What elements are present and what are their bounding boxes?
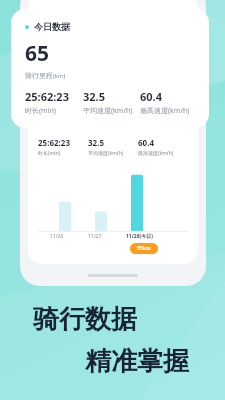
staticText: (km) (53, 72, 66, 80)
staticText: 65km (137, 245, 151, 252)
staticText: 时长(min) (25, 106, 56, 116)
staticText: 时长(min) (38, 150, 61, 157)
staticText: 骑行数据 (33, 303, 137, 336)
staticText: 11/26 (50, 233, 64, 240)
staticText: 60.4 (138, 137, 154, 148)
staticText: 骑行里程 (25, 71, 53, 80)
staticText: 精准掌握 (85, 345, 189, 378)
staticText: 65 (25, 39, 50, 68)
staticText: 最高速度(km/h) (140, 106, 190, 116)
staticText: 11/28(今日) (126, 233, 153, 240)
button[interactable]: 65km (130, 243, 158, 254)
button[interactable]: 今日数据 (25, 21, 197, 116)
staticText: 32.5 (83, 89, 105, 104)
staticText: 25:62:23 (38, 137, 70, 148)
staticText: 今日数据 (34, 21, 70, 32)
staticText: 25:62:23 (25, 89, 69, 104)
staticText: 最高速度(km/h) (138, 150, 174, 157)
staticText: 平均速度(km/h) (88, 150, 124, 157)
staticText: 32.5 (88, 137, 104, 148)
staticText: 11/27 (88, 233, 102, 240)
staticText: 平均速度(km/h) (83, 106, 133, 116)
staticText: 60.4 (140, 89, 162, 104)
